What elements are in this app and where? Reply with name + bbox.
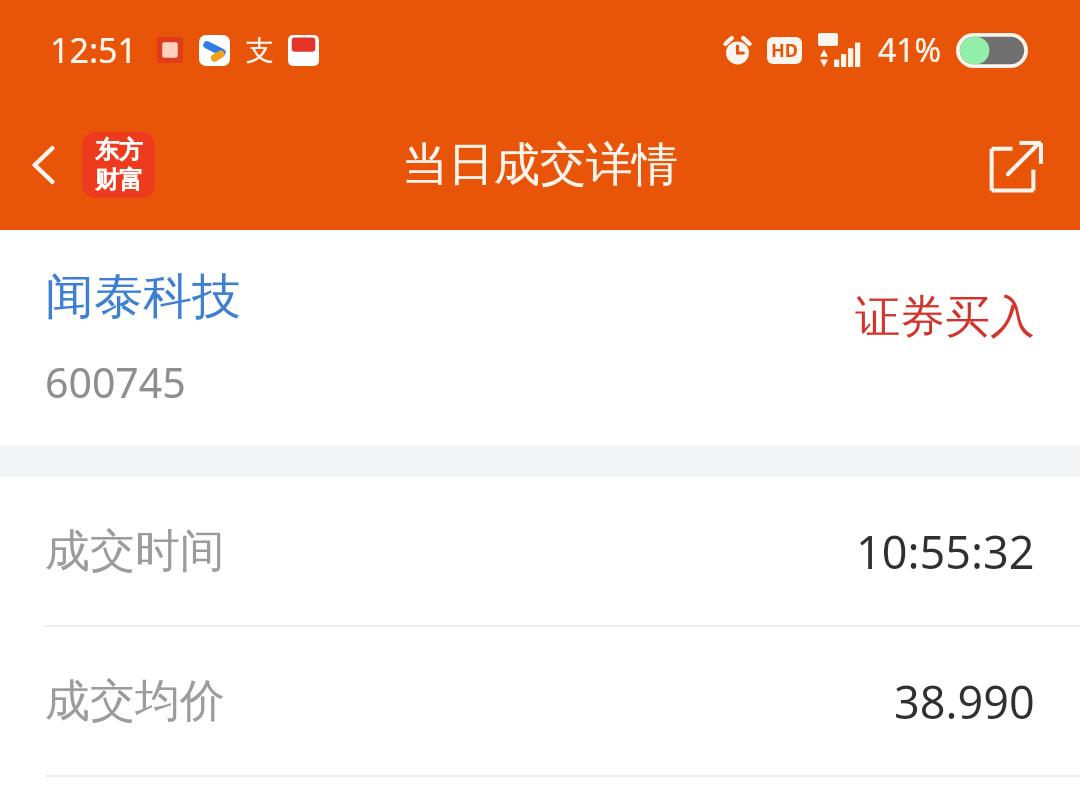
staticText: 12:51 [50, 27, 137, 73]
staticText: 当日成交详情 [402, 136, 678, 194]
staticText: 41% [878, 28, 942, 72]
button[interactable]: Share [980, 129, 1052, 201]
staticText: HD [771, 38, 798, 63]
staticText: 财富 [95, 165, 143, 195]
staticText: 成交均价 [45, 673, 225, 730]
staticText: 600745 [45, 354, 186, 410]
staticText: 闻泰科技 [45, 266, 241, 328]
button[interactable]: 成交均价 [0, 627, 1080, 775]
button[interactable]: East Money [82, 132, 155, 198]
staticText: 10:55:32 [856, 521, 1035, 582]
button[interactable]: Back [12, 133, 76, 197]
staticText: 支 [246, 33, 274, 68]
staticText: 成交时间 [45, 523, 225, 580]
staticText: 东方 [95, 135, 143, 165]
button[interactable]: 闻泰科技 [0, 230, 1080, 445]
button[interactable]: 成交时间 [0, 477, 1080, 625]
staticText: 证券买入 [855, 289, 1035, 346]
staticText: 38.990 [894, 671, 1035, 732]
